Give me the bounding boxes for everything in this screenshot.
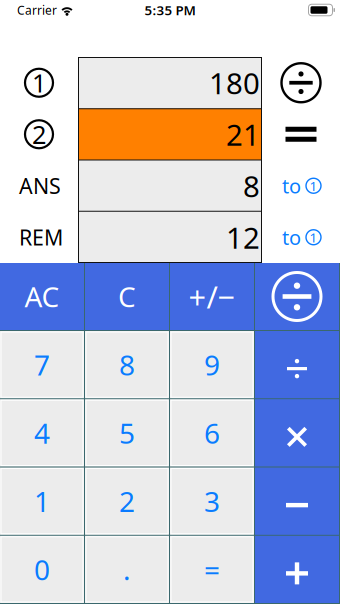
button[interactable] <box>255 467 340 536</box>
staticText: 5:35 PM <box>144 1 195 19</box>
button[interactable]: 6 <box>170 399 255 467</box>
button[interactable]: to <box>262 160 340 211</box>
button[interactable]: AC <box>0 263 85 331</box>
staticText: 1 <box>34 482 50 520</box>
button[interactable]: 2 <box>85 467 170 536</box>
staticText: 3 <box>204 482 220 520</box>
button[interactable]: 0 <box>0 536 85 604</box>
staticText: ANS <box>19 172 61 200</box>
button[interactable]: 5 <box>85 399 170 467</box>
button[interactable] <box>255 536 340 604</box>
staticText: 6 <box>204 414 220 451</box>
button[interactable] <box>255 331 340 399</box>
staticText: C <box>118 278 136 315</box>
staticText: REM <box>19 223 63 251</box>
staticText: 21 <box>226 115 260 154</box>
button[interactable]: +/− <box>170 263 255 331</box>
button[interactable]: 7 <box>0 331 85 399</box>
button[interactable]: 8 <box>85 331 170 399</box>
button[interactable]: . <box>85 536 170 604</box>
staticText: 2 <box>32 117 46 151</box>
button[interactable] <box>255 263 340 331</box>
button[interactable]: 1 <box>0 467 85 536</box>
button[interactable]: 4 <box>0 399 85 467</box>
staticText: AC <box>24 278 59 315</box>
staticText: 8 <box>243 166 260 205</box>
staticText: to <box>282 172 301 199</box>
staticText: 9 <box>204 346 220 383</box>
button[interactable]: 3 <box>170 467 255 536</box>
button[interactable]: = <box>170 536 255 604</box>
staticText: 1 <box>32 66 46 99</box>
button[interactable]: 9 <box>170 331 255 399</box>
staticText: 7 <box>34 346 50 383</box>
staticText: 4 <box>34 414 50 451</box>
staticText: +/− <box>188 276 235 317</box>
staticText: 12 <box>226 218 260 257</box>
button[interactable]: to <box>262 211 340 263</box>
staticText: 8 <box>119 346 135 383</box>
staticText: 0 <box>34 551 50 588</box>
staticText: 1 <box>309 177 317 195</box>
staticText: 2 <box>119 482 135 520</box>
staticText: = <box>204 551 220 588</box>
button[interactable] <box>255 399 340 467</box>
staticText: 180 <box>209 63 260 102</box>
staticText: 1 <box>309 228 317 246</box>
staticText: . <box>123 551 131 588</box>
staticText: 5 <box>119 414 135 451</box>
button[interactable]: C <box>85 263 170 331</box>
staticText: Carrier <box>17 2 57 18</box>
staticText: to <box>282 224 301 251</box>
